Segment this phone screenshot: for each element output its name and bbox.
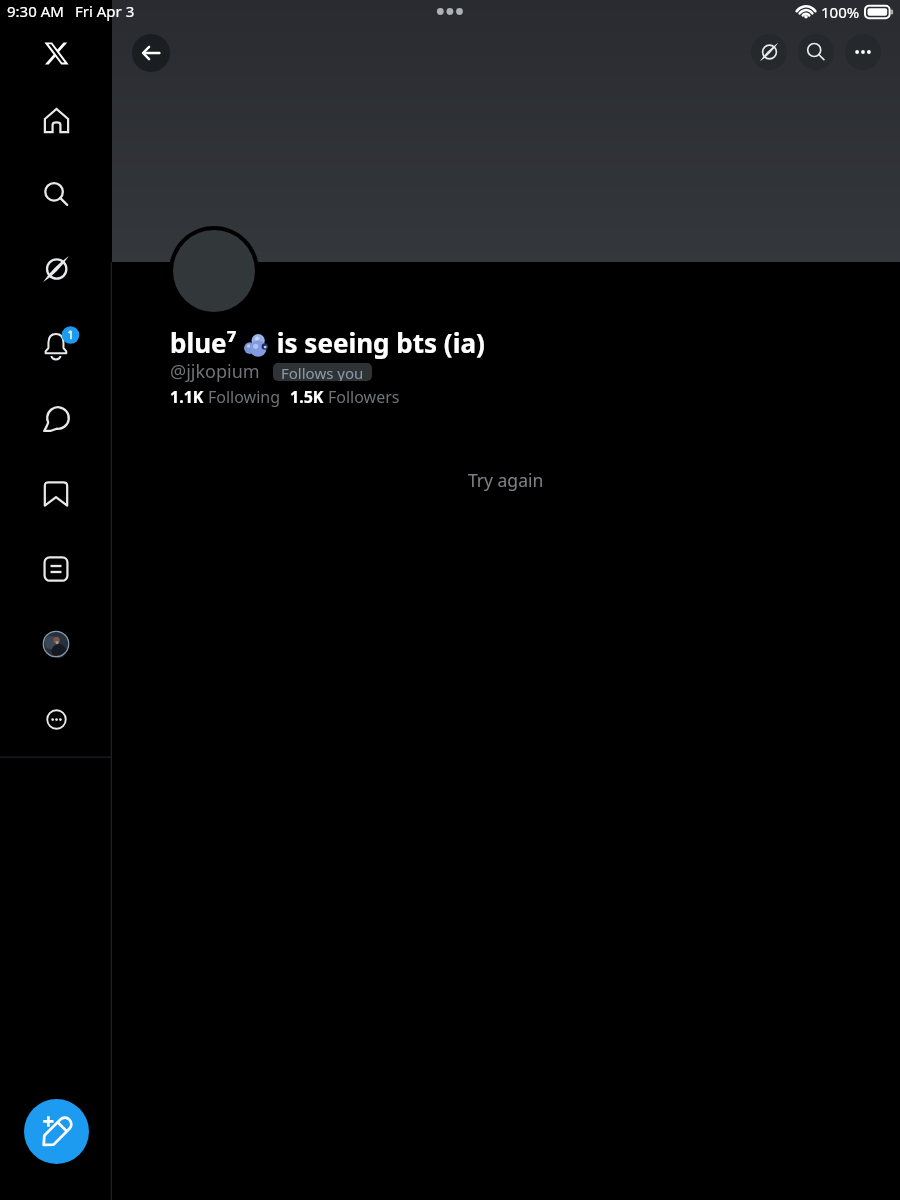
- button[interactable]: Grok: [11, 232, 101, 306]
- staticText: Followers: [328, 386, 400, 408]
- staticText: is seeing bts (ia): [270, 325, 485, 360]
- button[interactable]: Messages: [11, 382, 101, 456]
- button[interactable]: Follows you: [273, 363, 372, 381]
- button[interactable]: Notifications: [11, 305, 101, 379]
- staticText: 1.5K: [290, 386, 328, 408]
- staticText: 9:30 AM: [7, 1, 64, 21]
- button[interactable]: Lists: [11, 532, 101, 606]
- button[interactable]: X: [11, 16, 101, 90]
- staticText: 1.1K: [170, 386, 208, 408]
- staticText: Try again: [468, 468, 544, 492]
- staticText: @jjkopium: [170, 359, 260, 384]
- button[interactable]: 1.1K: [170, 386, 281, 408]
- button[interactable]: Search: [11, 157, 101, 231]
- button[interactable]: More: [11, 682, 101, 756]
- button[interactable]: Compose post: [24, 1099, 89, 1164]
- staticText: blue⁷: [170, 325, 244, 360]
- button[interactable]: Search: [798, 34, 834, 70]
- button[interactable]: Try again: [460, 460, 552, 500]
- button[interactable]: Bookmarks: [11, 457, 101, 531]
- button[interactable]: 1.5K: [290, 386, 400, 408]
- button[interactable]: More options: [845, 34, 881, 70]
- staticText: Fri Apr 3: [75, 1, 135, 21]
- button[interactable]: Grok: [751, 34, 787, 70]
- staticText: Following: [208, 386, 281, 408]
- staticText: 100%: [821, 2, 860, 22]
- button[interactable]: Profile: [11, 607, 101, 681]
- button[interactable]: Back: [132, 34, 170, 72]
- button[interactable]: Home: [11, 83, 101, 157]
- staticText: Follows you: [281, 363, 364, 381]
- button[interactable]: Profile photo: [173, 230, 255, 312]
